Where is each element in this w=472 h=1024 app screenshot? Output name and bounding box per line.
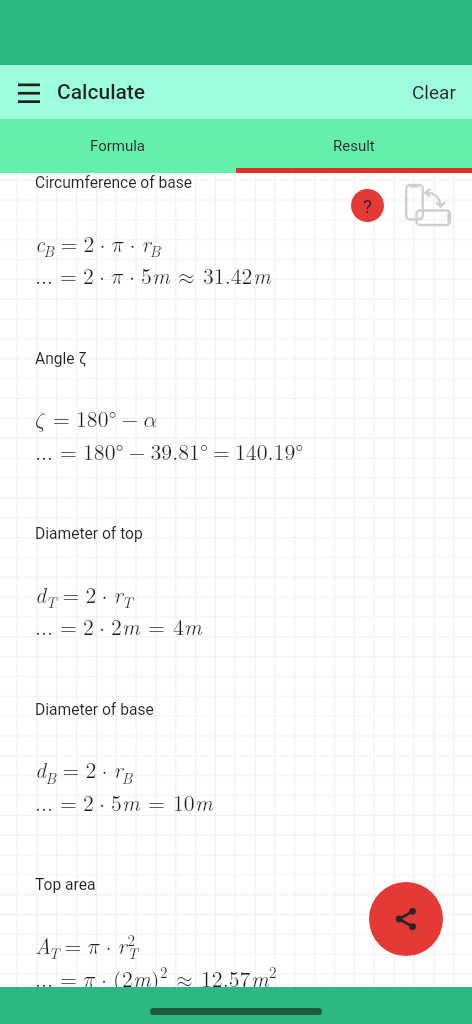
staticText: Angle ζ — [35, 350, 87, 368]
staticText: Top area — [35, 876, 96, 894]
button[interactable]: Formula — [0, 119, 236, 173]
button[interactable]: Rotate screen orientation — [404, 183, 452, 231]
staticText: Result — [333, 137, 375, 155]
staticText: Clear — [412, 81, 456, 103]
staticText: Formula — [90, 137, 146, 155]
button[interactable]: Clear — [396, 71, 472, 113]
staticText: ? — [363, 195, 372, 217]
button[interactable]: Help — [351, 189, 384, 222]
staticText: Circumference of base — [35, 174, 193, 192]
button[interactable]: Open navigation menu — [10, 73, 48, 111]
button[interactable]: Result — [236, 119, 472, 173]
staticText: Diameter of top — [35, 525, 143, 543]
button[interactable]: Share — [369, 882, 443, 956]
staticText: Calculate — [57, 80, 146, 105]
staticText: Diameter of base — [35, 701, 154, 719]
